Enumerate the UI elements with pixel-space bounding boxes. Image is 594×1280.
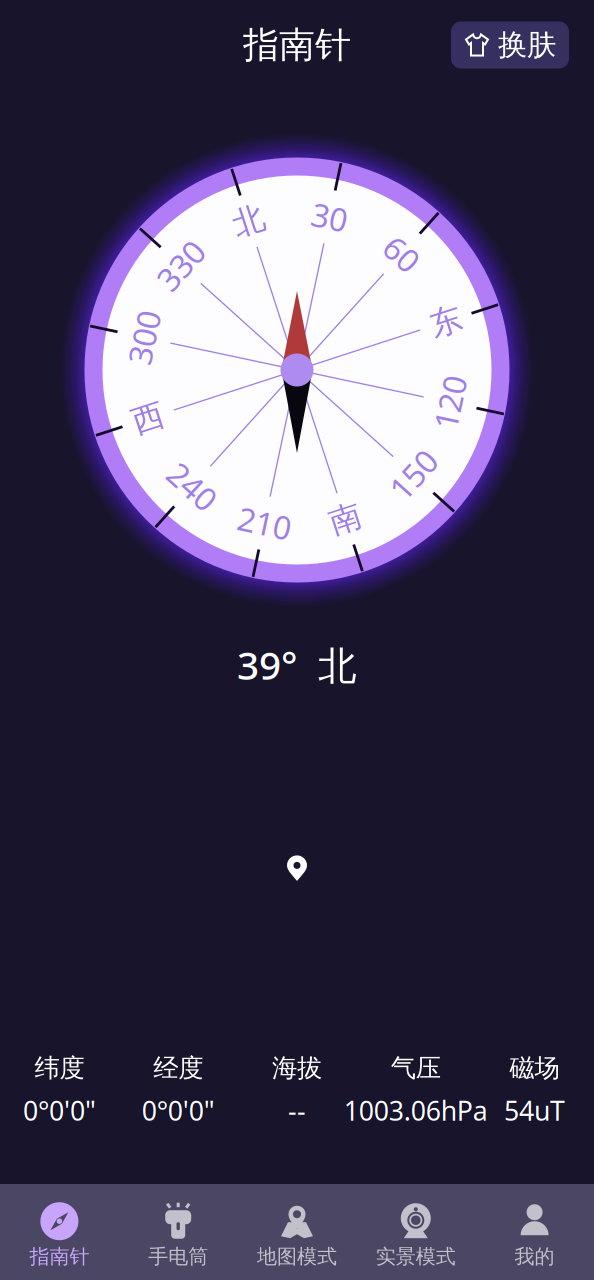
staticText: 330 bbox=[154, 244, 208, 286]
staticText: 气压 bbox=[391, 1052, 441, 1084]
staticText: 南 bbox=[329, 499, 361, 538]
staticText: 指南针 bbox=[29, 1244, 89, 1269]
staticText: 39° 北 bbox=[237, 639, 357, 690]
staticText: 0°0'0" bbox=[23, 1093, 96, 1128]
staticText: 磁场 bbox=[510, 1052, 560, 1084]
staticText: -- bbox=[288, 1093, 306, 1128]
staticText: 海拔 bbox=[272, 1052, 322, 1084]
staticText: 1003.06hPa bbox=[344, 1093, 488, 1128]
staticText: 西 bbox=[132, 399, 164, 438]
staticText: 东 bbox=[430, 302, 462, 341]
staticText: 北 bbox=[233, 201, 265, 241]
staticText: 手电筒 bbox=[148, 1244, 208, 1269]
staticText: 换肤 bbox=[498, 27, 556, 63]
staticText: 300 bbox=[117, 316, 171, 359]
button[interactable]: 手电筒 bbox=[119, 1184, 238, 1280]
staticText: 实景模式 bbox=[376, 1244, 456, 1269]
staticText: 150 bbox=[386, 453, 440, 496]
staticText: 地图模式 bbox=[257, 1244, 337, 1269]
staticText: 120 bbox=[423, 381, 477, 424]
staticText: 0°0'0" bbox=[142, 1093, 215, 1128]
staticText: 210 bbox=[237, 502, 291, 544]
staticText: 指南针 bbox=[243, 23, 351, 67]
button[interactable]: 实景模式 bbox=[356, 1184, 475, 1280]
staticText: 纬度 bbox=[34, 1052, 84, 1084]
staticText: 30 bbox=[311, 196, 347, 238]
button[interactable]: 我的 bbox=[475, 1184, 594, 1280]
staticText: 54uT bbox=[504, 1093, 565, 1128]
staticText: 240 bbox=[165, 465, 219, 508]
staticText: 我的 bbox=[515, 1244, 555, 1269]
button[interactable]: 换肤 bbox=[451, 21, 569, 68]
staticText: 60 bbox=[384, 232, 420, 275]
staticText: 经度 bbox=[153, 1052, 203, 1084]
button[interactable]: 指南针 bbox=[0, 1184, 119, 1280]
button[interactable]: 地图模式 bbox=[238, 1184, 356, 1280]
